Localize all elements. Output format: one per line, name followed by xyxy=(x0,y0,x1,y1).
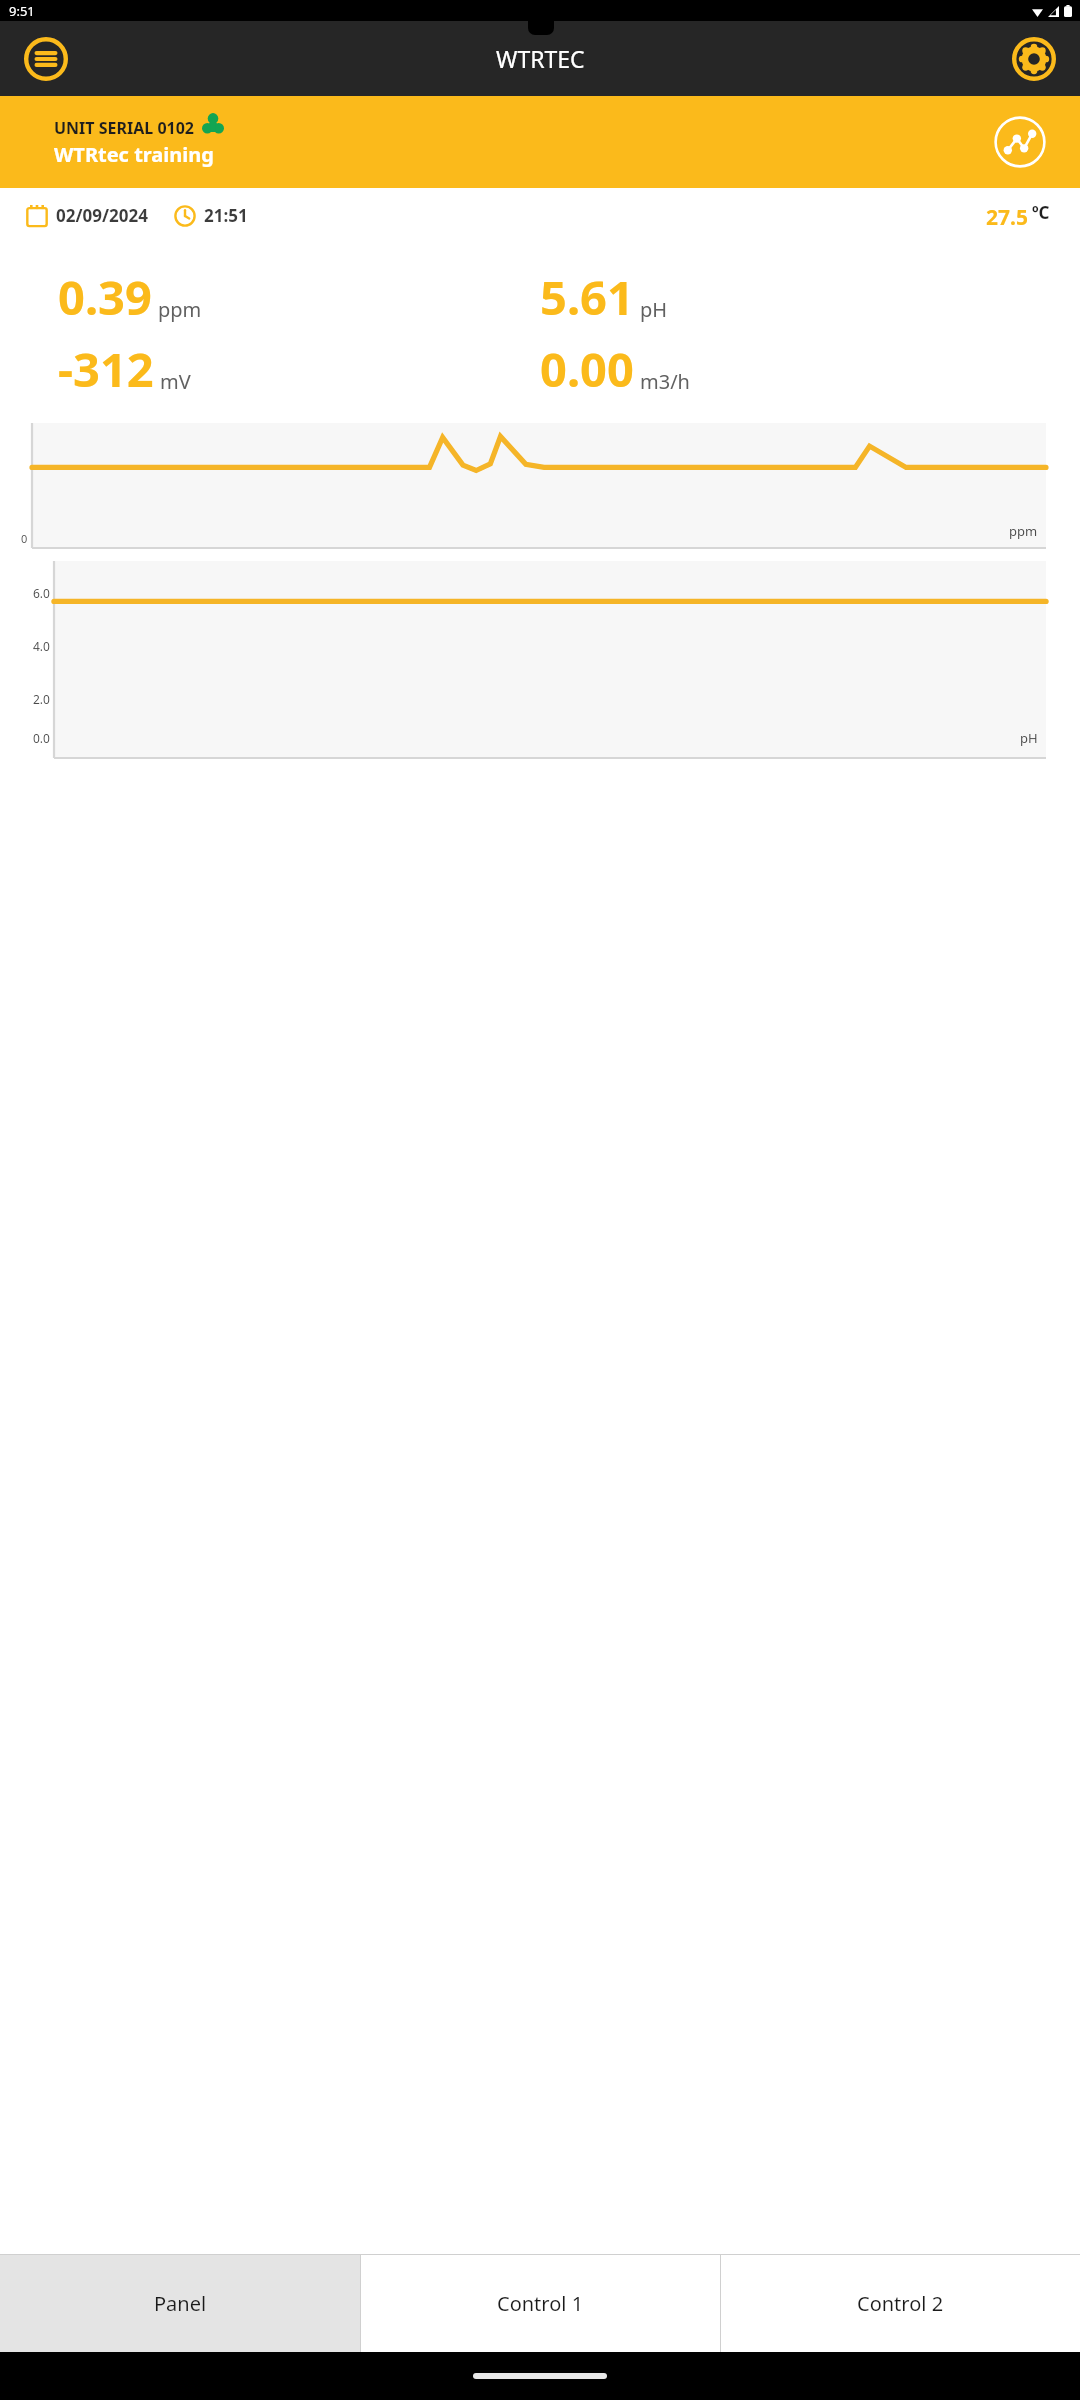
staticText: Control 2 xyxy=(857,2290,944,2317)
staticText: WTRtec training xyxy=(54,141,214,168)
staticText: Panel xyxy=(154,2290,207,2317)
button[interactable]: Menu xyxy=(22,35,70,83)
staticText: ºC xyxy=(1032,201,1050,224)
staticText: UNIT SERIAL 0102 xyxy=(54,117,195,139)
button[interactable]: Settings xyxy=(1010,35,1058,83)
staticText: 5.61 xyxy=(540,265,634,329)
staticText: 4.0 xyxy=(33,638,50,654)
staticText: 0 xyxy=(21,531,28,546)
staticText: WTRTEC xyxy=(496,43,585,74)
staticText: -312 xyxy=(58,337,154,401)
staticText: Control 1 xyxy=(497,2290,584,2317)
staticText: 0.00 xyxy=(540,337,634,401)
staticText: ppm xyxy=(158,296,202,323)
staticText: m3/h xyxy=(640,368,690,395)
button[interactable]: Control 2 xyxy=(721,2255,1080,2352)
staticText: 2.0 xyxy=(33,691,50,707)
staticText: 9:51 xyxy=(9,2,35,20)
button[interactable]: Control 1 xyxy=(361,2255,720,2352)
staticText: pH xyxy=(1020,729,1038,747)
button[interactable]: Panel xyxy=(0,2255,360,2352)
staticText: 0.39 xyxy=(58,265,152,329)
staticText: 27.5 xyxy=(986,203,1028,232)
staticText: ppm xyxy=(1009,522,1038,540)
staticText: 02/09/2024 xyxy=(56,204,148,227)
staticText: 6.0 xyxy=(33,585,50,601)
staticText: mV xyxy=(160,368,191,395)
staticText: pH xyxy=(640,296,668,323)
button[interactable]: Trends xyxy=(992,114,1048,170)
staticText: 0.0 xyxy=(33,730,50,746)
staticText: 21:51 xyxy=(204,204,248,227)
